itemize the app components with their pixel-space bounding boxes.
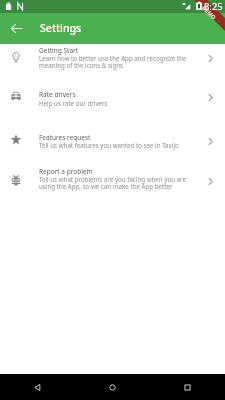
staticText: Getting Start	[39, 46, 79, 55]
staticText: Report a problem	[39, 167, 93, 176]
staticText: Features request	[39, 133, 91, 142]
button[interactable]: Back	[0, 374, 75, 400]
button[interactable]	[0, 77, 225, 118]
button[interactable]: Home	[75, 374, 150, 400]
button[interactable]	[0, 161, 225, 202]
staticText: Settings	[40, 21, 82, 35]
staticText: Learn how to better use the App and reco…	[39, 54, 191, 70]
staticText: Tell us what features you wanted to see …	[39, 141, 191, 149]
staticText: Tell us what problems are you facing whe…	[39, 175, 191, 191]
button[interactable]	[0, 118, 225, 161]
button[interactable]: Back	[5, 13, 28, 44]
staticText: Help us rate our drivers	[39, 99, 191, 107]
staticText: Rate drivers	[39, 90, 76, 99]
button[interactable]: Recent apps	[150, 374, 225, 400]
staticText: 8:25	[204, 0, 223, 13]
button[interactable]	[0, 44, 225, 77]
staticText: DEMO	[201, 4, 218, 21]
